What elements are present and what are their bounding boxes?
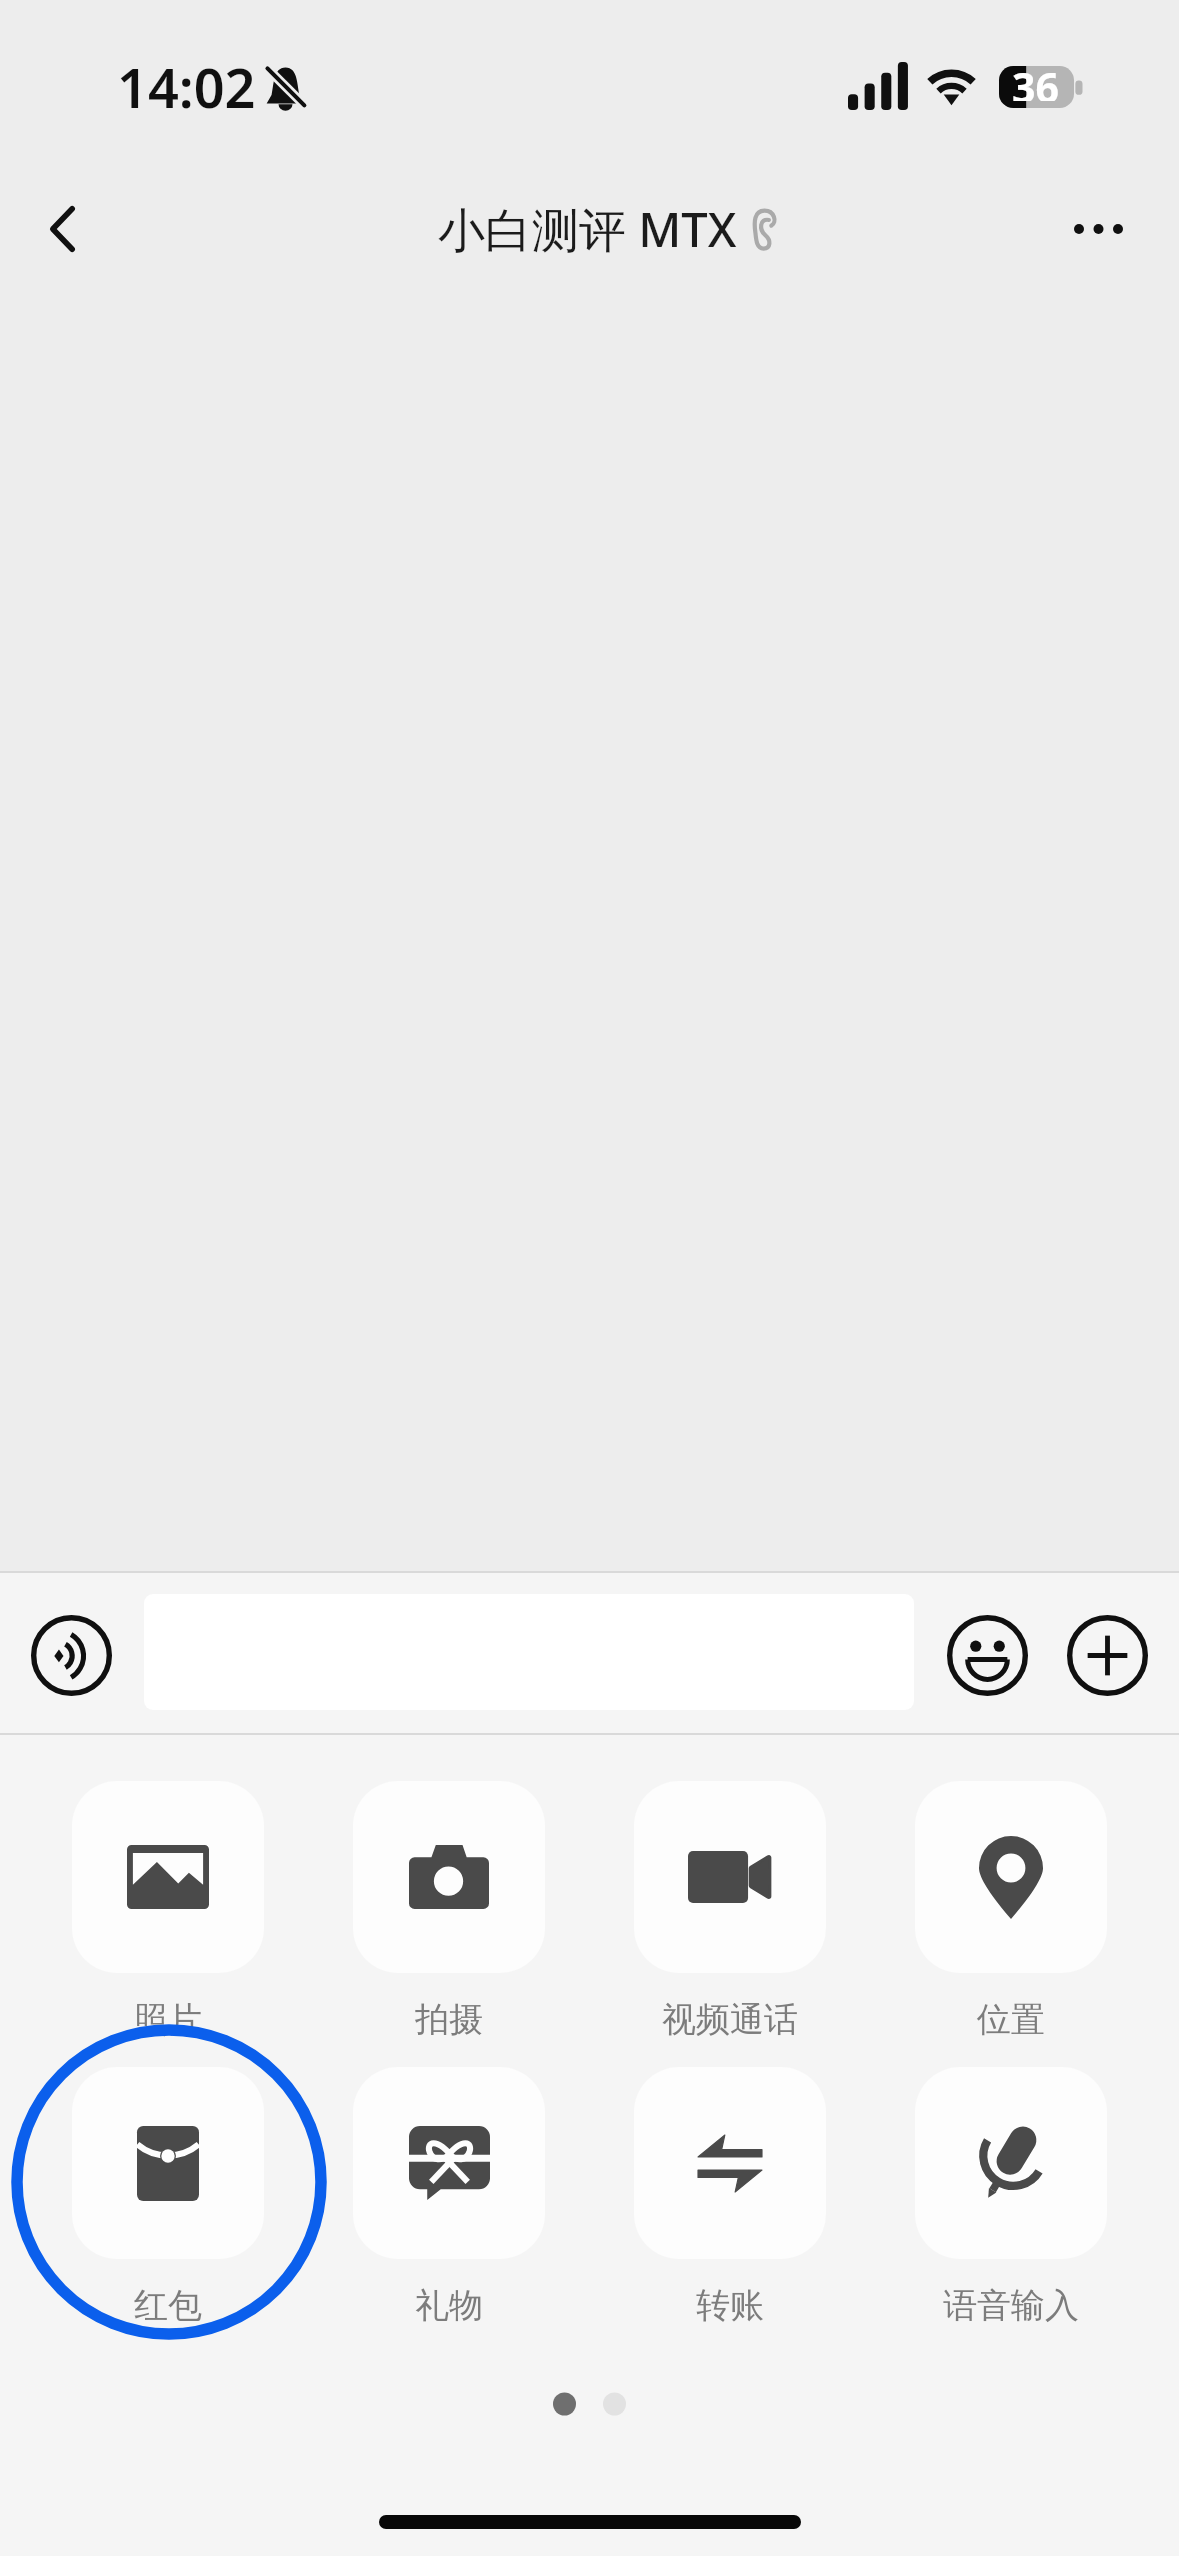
staticText: 14:02 bbox=[117, 50, 256, 124]
button[interactable]: 礼物 bbox=[353, 2067, 545, 2317]
button[interactable]: Voice message bbox=[19, 1603, 123, 1707]
staticText: 转账 bbox=[696, 2284, 764, 2327]
button[interactable]: Emoji bbox=[935, 1603, 1039, 1707]
button[interactable]: More options bbox=[1046, 170, 1150, 287]
staticText: 视频通话 bbox=[662, 1998, 798, 2041]
button[interactable]: 转账 bbox=[634, 2067, 826, 2317]
button[interactable]: 拍摄 bbox=[353, 1781, 545, 2031]
staticText: 红包 bbox=[134, 2284, 202, 2327]
button[interactable]: 红包 bbox=[72, 2067, 264, 2317]
button[interactable]: 语音输入 bbox=[915, 2067, 1107, 2317]
staticText: 礼物 bbox=[415, 2284, 483, 2327]
staticText: 语音输入 bbox=[943, 2284, 1079, 2327]
button[interactable]: 照片 bbox=[72, 1781, 264, 2031]
staticText: 36 bbox=[1012, 59, 1059, 101]
staticText: 小白测评 MTX bbox=[438, 197, 737, 261]
button[interactable]: 位置 bbox=[915, 1781, 1107, 2031]
button[interactable]: More actions bbox=[1055, 1603, 1159, 1707]
staticText: 位置 bbox=[977, 1998, 1045, 2041]
button[interactable]: 视频通话 bbox=[634, 1781, 826, 2031]
button[interactable]: Back bbox=[14, 170, 110, 287]
staticText: 照片 bbox=[134, 1998, 202, 2041]
staticText: 拍摄 bbox=[415, 1998, 483, 2041]
